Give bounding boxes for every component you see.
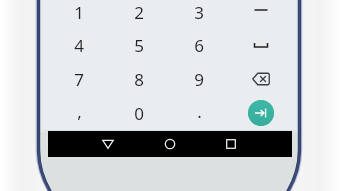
- staticText: 6: [194, 34, 204, 57]
- staticText: 9: [194, 68, 204, 91]
- staticText: 1: [74, 1, 84, 24]
- button[interactable]: 9: [172, 63, 226, 96]
- button[interactable]: Home: [150, 131, 190, 157]
- button[interactable]: 5: [112, 29, 166, 62]
- staticText: 0: [134, 102, 144, 125]
- button[interactable]: 8: [112, 63, 166, 96]
- button[interactable]: 3: [172, 0, 226, 29]
- staticText: ,: [77, 100, 82, 123]
- button[interactable]: .: [172, 97, 226, 130]
- button[interactable]: Back: [88, 131, 128, 157]
- staticText: .: [197, 100, 202, 123]
- button[interactable]: 7: [52, 63, 106, 96]
- button[interactable]: ,: [52, 97, 106, 130]
- staticText: 2: [134, 1, 144, 24]
- button[interactable]: Backspace: [238, 64, 284, 94]
- button[interactable]: 0: [112, 97, 166, 130]
- staticText: 3: [194, 1, 204, 24]
- button[interactable]: Next: [248, 100, 274, 126]
- button[interactable]: Recents: [211, 131, 251, 157]
- button[interactable]: 2: [112, 0, 166, 29]
- staticText: 7: [74, 68, 84, 91]
- staticText: 4: [74, 34, 84, 57]
- button[interactable]: Space: [238, 30, 284, 60]
- button[interactable]: 6: [172, 29, 226, 62]
- button[interactable]: Minus: [238, 0, 284, 27]
- staticText: 5: [134, 34, 144, 57]
- button[interactable]: 4: [52, 29, 106, 62]
- button[interactable]: 1: [52, 0, 106, 29]
- staticText: 8: [134, 68, 144, 91]
